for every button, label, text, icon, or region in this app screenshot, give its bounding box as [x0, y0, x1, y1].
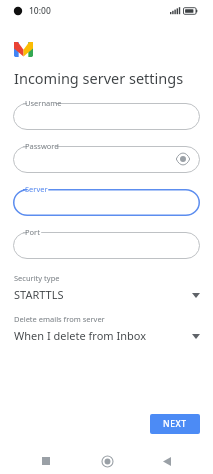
button[interactable]: Security type [0, 272, 213, 303]
button[interactable]: Password [13, 141, 200, 173]
button[interactable]: Show password [175, 151, 191, 167]
staticText: Server [25, 184, 48, 194]
button[interactable]: Back [152, 448, 182, 474]
button[interactable]: Port [13, 227, 200, 259]
staticText: When I delete from Inbox [14, 328, 146, 343]
staticText: 10:00 [29, 5, 51, 17]
button[interactable]: NEXT [150, 414, 200, 434]
staticText: Port [25, 227, 40, 237]
staticText: STARTTLS [14, 287, 64, 302]
button[interactable]: Recents [31, 448, 61, 474]
button[interactable]: Server [13, 184, 200, 216]
staticText: Incoming server settings [14, 68, 184, 88]
button[interactable]: Delete emails from server [0, 313, 213, 344]
button[interactable]: Username [13, 98, 200, 130]
staticText: Security type [14, 273, 60, 283]
staticText: Username [25, 98, 62, 108]
staticText: Password [25, 141, 59, 151]
staticText: NEXT [163, 418, 187, 430]
button[interactable]: Home [92, 448, 122, 474]
staticText: Delete emails from server [14, 314, 105, 324]
